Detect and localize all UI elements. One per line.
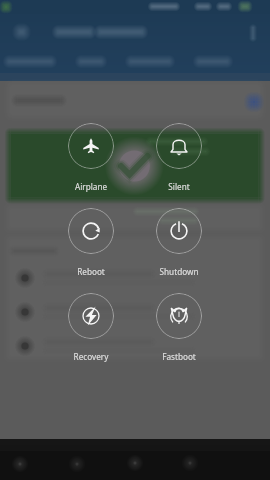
button[interactable]: Airplane xyxy=(54,123,128,192)
staticText: Shutdown xyxy=(142,266,216,277)
button[interactable]: Shutdown xyxy=(142,208,216,277)
staticText: Silent xyxy=(142,181,216,192)
staticText: Fastboot xyxy=(142,351,216,362)
button[interactable]: Reboot xyxy=(54,208,128,277)
staticText: Recovery xyxy=(54,351,128,362)
button[interactable]: Recovery xyxy=(54,293,128,362)
button[interactable]: Silent xyxy=(142,123,216,192)
staticText: Airplane xyxy=(54,181,128,192)
staticText: Reboot xyxy=(54,266,128,277)
button[interactable]: Fastboot xyxy=(142,293,216,362)
